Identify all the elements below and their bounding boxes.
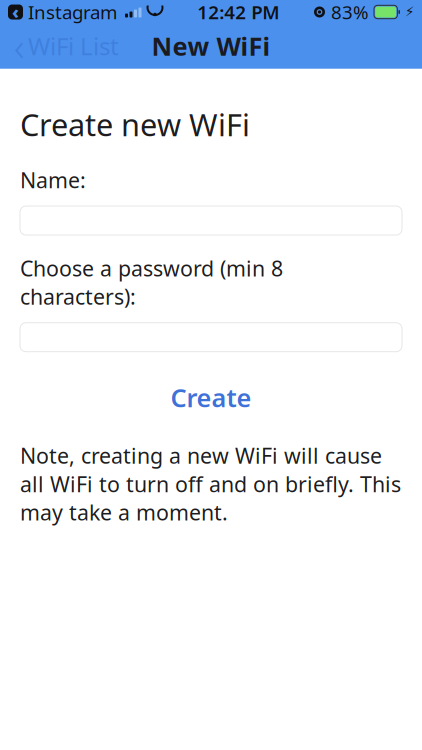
staticText: Name: (20, 166, 86, 194)
staticText: ⚡︎ (405, 4, 414, 19)
staticText: 83% (331, 0, 369, 24)
staticText: Choose a password (min 8 characters): (20, 254, 283, 311)
staticText: WiFi List (28, 30, 119, 62)
button[interactable]: ‹ (0, 14, 119, 78)
staticText: ‹ (14, 20, 24, 72)
staticText: Note, creating a new WiFi will cause all… (20, 441, 401, 526)
staticText: 12:42 PM (197, 0, 279, 24)
staticText: New WiFi (151, 29, 270, 63)
staticText: Create (170, 381, 251, 414)
staticText: Instagram (28, 0, 117, 24)
button[interactable]: Create (152, 374, 269, 421)
staticText: ‹ (12, 0, 19, 23)
staticText: Create new WiFi (20, 104, 250, 145)
